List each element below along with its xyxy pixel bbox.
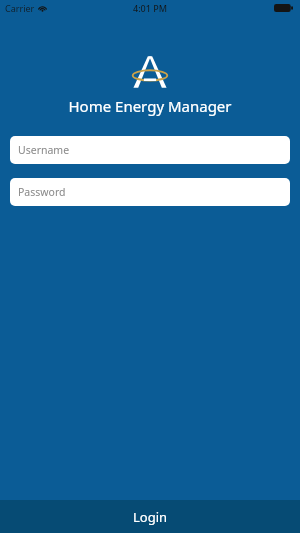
staticText: Home Energy Manager — [0, 96, 300, 116]
staticText: Username — [18, 143, 70, 157]
button[interactable]: Login — [0, 500, 300, 533]
button[interactable]: Password — [10, 178, 290, 206]
staticText: Login — [133, 508, 168, 526]
staticText: Carrier — [5, 2, 35, 14]
staticText: Password — [18, 185, 66, 199]
button[interactable]: Username — [10, 136, 290, 164]
staticText: 4:01 PM — [133, 2, 167, 14]
